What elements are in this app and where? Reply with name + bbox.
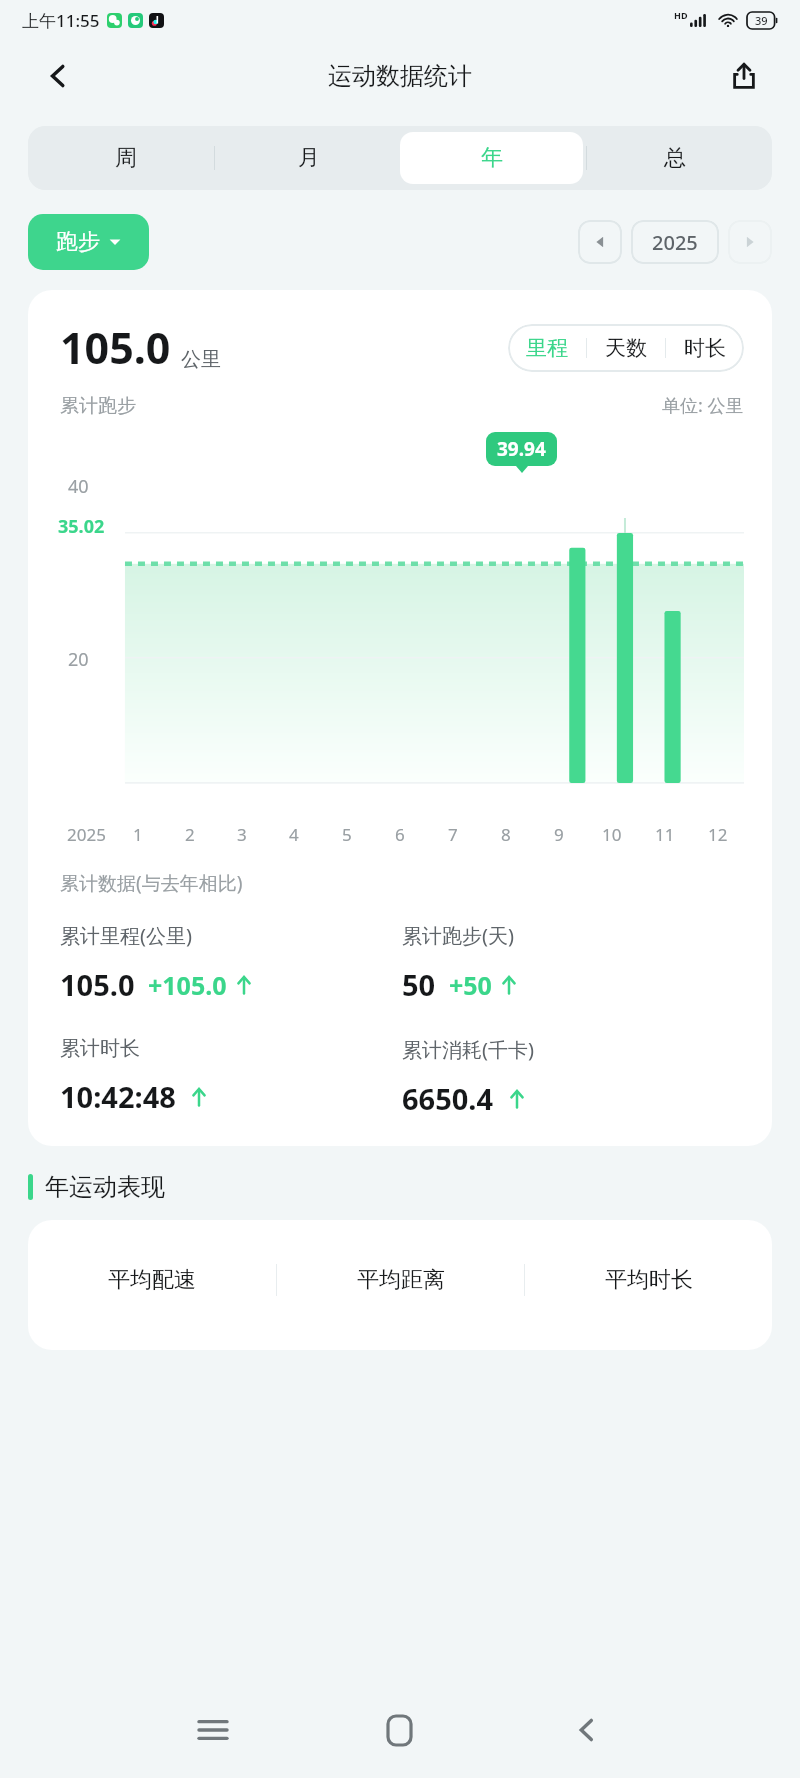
button[interactable]: 天数 <box>587 324 665 372</box>
staticText: 平均时长 <box>605 1266 693 1294</box>
staticText: 4 <box>289 823 299 846</box>
staticText: 公里 <box>181 347 221 372</box>
staticText: 12 <box>708 823 728 846</box>
staticText: 上午11:55 <box>22 9 100 32</box>
staticText: 105.0 <box>60 318 171 377</box>
staticText: 2025 <box>67 823 106 846</box>
staticText: 单位: 公里 <box>662 393 744 418</box>
staticText: 5 <box>342 823 352 846</box>
staticText: 6650.4 <box>402 1079 494 1118</box>
staticText: 运动数据统计 <box>328 61 472 91</box>
staticText: 累计跑步 <box>60 394 136 418</box>
button[interactable]: Recent apps <box>120 1682 306 1778</box>
staticText: 6 <box>395 823 405 846</box>
staticText: +50 <box>449 968 492 1002</box>
staticText: 平均配速 <box>108 1266 196 1294</box>
staticText: 2025 <box>652 229 698 256</box>
button[interactable]: 2025 <box>631 220 719 264</box>
button[interactable]: Share <box>720 52 768 100</box>
staticText: 9 <box>554 823 564 846</box>
staticText: +105.0 <box>148 968 227 1002</box>
staticText: 35.02 <box>58 514 105 539</box>
staticText: 周 <box>115 144 137 172</box>
button[interactable]: Home <box>306 1682 493 1778</box>
staticText: 平均距离 <box>357 1266 445 1294</box>
staticText: 里程 <box>526 335 568 361</box>
staticText: 10 <box>602 823 622 846</box>
button[interactable]: 总 <box>583 132 766 184</box>
staticText: 39 <box>755 13 768 28</box>
staticText: 累计数据(与去年相比) <box>60 870 243 896</box>
staticText: 累计时长 <box>60 1036 140 1061</box>
staticText: 月 <box>298 144 320 172</box>
staticText: 时长 <box>684 335 726 361</box>
staticText: 年 <box>481 144 503 172</box>
staticText: 40 <box>68 474 89 499</box>
staticText: 1 <box>133 823 143 846</box>
staticText: 累计消耗(千卡) <box>402 1036 534 1063</box>
button[interactable]: 月 <box>217 132 400 184</box>
staticText: 10:42:48 <box>60 1077 176 1116</box>
staticText: 105.0 <box>60 965 135 1004</box>
staticText: 累计里程(公里) <box>60 922 192 949</box>
staticText: 20 <box>68 647 89 672</box>
button[interactable]: Next year <box>728 220 772 264</box>
staticText: HD <box>674 9 688 21</box>
staticText: 天数 <box>605 335 647 361</box>
staticText: 跑步 <box>56 228 100 256</box>
staticText: 8 <box>501 823 511 846</box>
button[interactable]: 时长 <box>666 324 744 372</box>
staticText: 总 <box>664 144 686 172</box>
staticText: 11 <box>655 823 675 846</box>
button[interactable]: 周 <box>34 132 217 184</box>
staticText: 50 <box>402 965 436 1004</box>
staticText: 39.94 <box>497 436 546 462</box>
button[interactable]: Previous year <box>578 220 622 264</box>
button[interactable]: 年 <box>400 132 583 184</box>
staticText: 7 <box>448 823 458 846</box>
button[interactable]: 跑步 <box>28 214 149 270</box>
staticText: 3 <box>237 823 247 846</box>
button[interactable]: 里程 <box>508 324 586 372</box>
staticText: 2 <box>185 823 195 846</box>
button[interactable]: Back <box>493 1682 680 1778</box>
staticText: 累计跑步(天) <box>402 922 514 949</box>
staticText: 年运动表现 <box>45 1172 165 1202</box>
button[interactable]: Back <box>34 52 82 100</box>
